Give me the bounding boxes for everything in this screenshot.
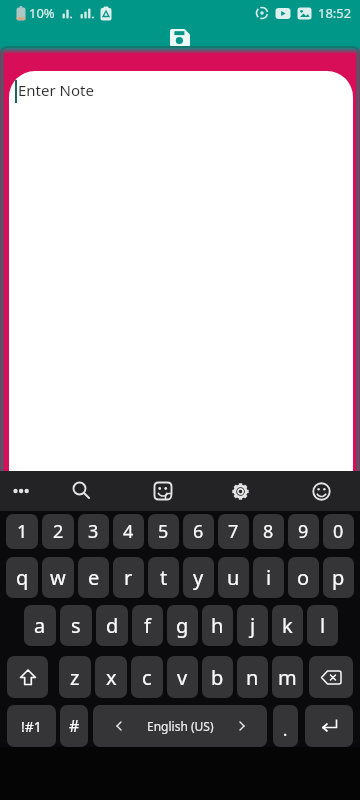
button[interactable]: [309, 656, 353, 698]
staticText: 4: [123, 519, 134, 544]
button[interactable]: q: [6, 557, 38, 598]
button[interactable]: d: [96, 605, 128, 646]
button[interactable]: r: [113, 557, 144, 598]
staticText: 9: [298, 519, 309, 544]
staticText: q: [16, 564, 29, 591]
staticText: 2: [53, 519, 64, 544]
staticText: m: [278, 664, 297, 691]
staticText: v: [177, 664, 188, 691]
button[interactable]: 4: [113, 514, 144, 549]
button[interactable]: l: [307, 605, 338, 646]
button[interactable]: .: [273, 705, 298, 747]
staticText: k: [282, 612, 293, 639]
button[interactable]: [298, 471, 344, 511]
staticText: 0: [333, 519, 344, 544]
staticText: Enter Note: [18, 80, 94, 100]
button[interactable]: x: [95, 656, 127, 698]
button[interactable]: 0: [323, 514, 354, 549]
staticText: 1: [17, 519, 28, 544]
button[interactable]: y: [183, 557, 214, 598]
staticText: 5: [158, 519, 169, 544]
staticText: d: [106, 612, 119, 639]
staticText: #: [69, 715, 80, 737]
button[interactable]: f: [132, 605, 163, 646]
button[interactable]: 7: [218, 514, 249, 549]
button[interactable]: b: [202, 656, 233, 698]
button[interactable]: [167, 29, 193, 47]
staticText: u: [227, 564, 240, 591]
staticText: l: [320, 612, 326, 639]
button[interactable]: p: [323, 557, 354, 598]
staticText: s: [71, 612, 81, 639]
staticText: w: [50, 564, 66, 591]
button[interactable]: c: [131, 656, 163, 698]
button[interactable]: w: [42, 557, 74, 598]
staticText: f: [144, 612, 151, 639]
button[interactable]: [58, 471, 104, 511]
button[interactable]: 2: [42, 514, 74, 549]
staticText: i: [266, 564, 272, 591]
staticText: p: [332, 564, 345, 591]
staticText: r: [124, 564, 133, 591]
button[interactable]: 5: [148, 514, 179, 549]
button[interactable]: o: [288, 557, 319, 598]
button[interactable]: 6: [183, 514, 214, 549]
button[interactable]: z: [59, 656, 91, 698]
staticText: b: [211, 664, 224, 691]
staticText: 8: [263, 519, 274, 544]
staticText: a: [34, 612, 46, 639]
button[interactable]: 9: [288, 514, 319, 549]
staticText: t: [160, 564, 168, 591]
button[interactable]: u: [218, 557, 249, 598]
staticText: j: [250, 612, 256, 639]
staticText: .: [283, 719, 288, 741]
button[interactable]: 1: [6, 514, 38, 549]
staticText: e: [88, 564, 100, 591]
button[interactable]: #: [60, 705, 88, 747]
button[interactable]: i: [253, 557, 284, 598]
staticText: x: [106, 664, 117, 691]
button[interactable]: a: [24, 605, 56, 646]
staticText: 6: [193, 519, 204, 544]
staticText: o: [297, 564, 310, 591]
staticText: y: [193, 564, 204, 591]
staticText: !#1: [21, 717, 42, 736]
staticText: z: [70, 664, 80, 691]
button[interactable]: t: [148, 557, 179, 598]
button[interactable]: [0, 471, 42, 511]
button[interactable]: m: [272, 656, 303, 698]
button[interactable]: Enter Note: [9, 71, 353, 471]
staticText: English (US): [147, 718, 214, 734]
staticText: c: [142, 664, 152, 691]
button[interactable]: e: [78, 557, 109, 598]
button[interactable]: [217, 471, 263, 511]
staticText: 10%: [29, 4, 55, 22]
button[interactable]: !#1: [7, 705, 56, 747]
button[interactable]: [305, 705, 353, 747]
button[interactable]: v: [167, 656, 198, 698]
button[interactable]: 8: [253, 514, 284, 549]
button[interactable]: j: [237, 605, 268, 646]
staticText: 7: [228, 519, 239, 544]
button[interactable]: s: [60, 605, 92, 646]
staticText: h: [211, 612, 224, 639]
staticText: 18:52: [318, 4, 352, 22]
button[interactable]: 3: [78, 514, 109, 549]
button[interactable]: n: [237, 656, 268, 698]
staticText: n: [246, 664, 259, 691]
button[interactable]: g: [167, 605, 198, 646]
button[interactable]: k: [272, 605, 303, 646]
button[interactable]: English (US): [93, 705, 267, 747]
button[interactable]: [7, 656, 48, 698]
staticText: g: [176, 612, 189, 639]
button[interactable]: [140, 471, 186, 511]
staticText: 3: [88, 519, 99, 544]
button[interactable]: h: [202, 605, 233, 646]
